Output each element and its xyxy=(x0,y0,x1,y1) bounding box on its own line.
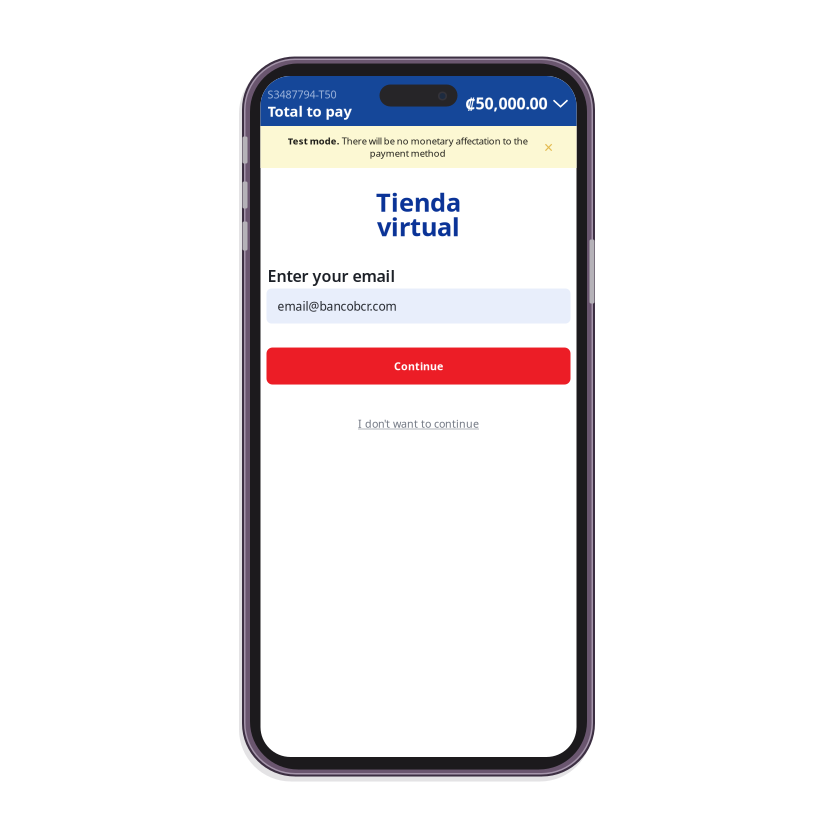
staticText: S3487794-T50 xyxy=(267,87,336,101)
staticText: email@bancobcr.com xyxy=(277,298,396,314)
staticText: virtual xyxy=(377,210,460,243)
staticText: Enter your email xyxy=(267,265,395,286)
staticText: I don't want to continue xyxy=(358,416,479,431)
staticText: Continue xyxy=(394,359,443,373)
staticText: Tienda xyxy=(376,185,461,219)
button[interactable]: ₡50,000.00 xyxy=(465,93,569,114)
staticText: ₡50,000.00 xyxy=(465,93,547,114)
button[interactable]: Dismiss xyxy=(539,138,557,156)
staticText: × xyxy=(544,136,553,158)
staticText: Test mode. There will be no monetary aff… xyxy=(287,135,527,159)
staticText: Total to pay xyxy=(267,101,351,121)
button[interactable]: Continue xyxy=(266,347,570,384)
button[interactable]: I don't want to continue xyxy=(266,416,570,430)
